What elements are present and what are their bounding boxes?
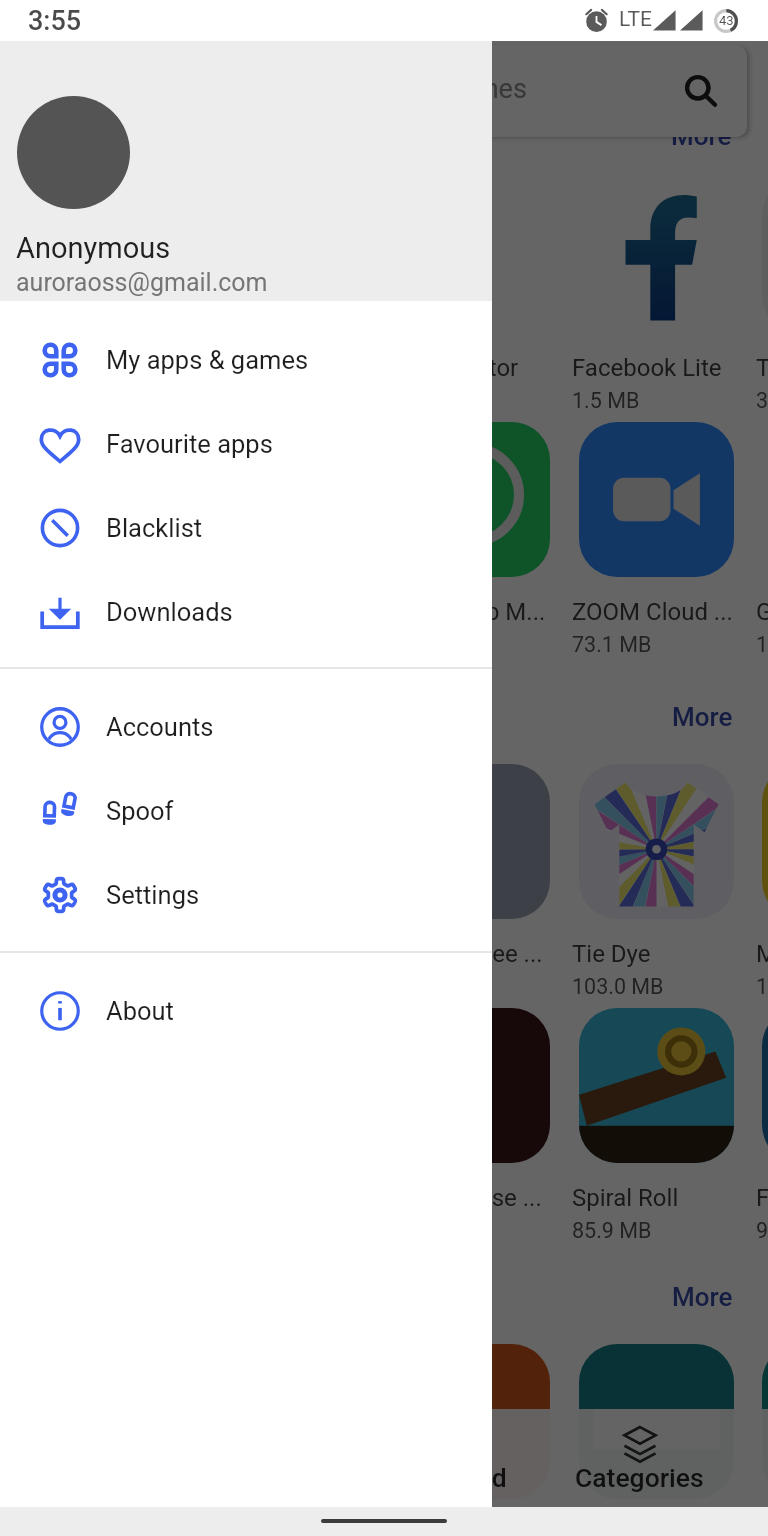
staticText: Snapseed	[22, 940, 183, 968]
staticText: Phone Case ...	[389, 1184, 550, 1212]
staticText: Spoof	[106, 796, 174, 826]
staticText: Messenger	[22, 598, 183, 626]
staticText: Downloads	[106, 597, 233, 627]
button[interactable]: Settings	[0, 853, 492, 937]
staticText: 73.1 MB	[572, 632, 652, 657]
staticText: Search for apps, games, movies & tunes	[48, 73, 527, 105]
staticText: Fun Race 3D	[756, 1184, 768, 1212]
staticText: Gallery Go	[756, 598, 768, 626]
staticText: MX Player	[22, 354, 183, 382]
button[interactable]: Blacklist	[0, 486, 492, 570]
staticText: My Talking ...	[756, 940, 768, 968]
staticText: ZOOM Cloud ...	[572, 598, 733, 626]
button[interactable]: Accounts	[0, 685, 492, 769]
staticText: 43	[719, 13, 734, 28]
button[interactable]: Spoof	[0, 769, 492, 853]
button[interactable]: My apps & games	[0, 318, 492, 402]
staticText: Hill Climb	[206, 1520, 367, 1536]
staticText: PUBG Mobile	[206, 940, 367, 968]
button[interactable]: Downloads	[0, 570, 492, 654]
staticText: auroraoss@gmail.com	[16, 268, 268, 297]
staticText: 3:55	[28, 5, 82, 37]
staticText: Favourite apps	[106, 429, 273, 459]
staticText: Garena Free ...	[389, 940, 550, 968]
staticText: Accounts	[106, 712, 214, 742]
staticText: WPS Office	[206, 354, 367, 382]
staticText: 38.1 MB	[756, 388, 768, 413]
staticText: Truecaller	[756, 354, 768, 382]
staticText: 1.5 MB	[572, 388, 640, 413]
staticText: Installed	[405, 1462, 507, 1493]
staticText: Settings	[106, 880, 200, 910]
staticText: Spiral Roll	[572, 1184, 733, 1212]
staticText: LTE	[619, 7, 652, 32]
button[interactable]: Favourite apps	[0, 402, 492, 486]
staticText: 85.9 MB	[572, 1218, 652, 1243]
staticText: WhatsApp M...	[389, 598, 550, 626]
staticText: Facebook Lite	[572, 354, 733, 382]
staticText: More	[672, 1282, 733, 1312]
staticText: 25.8 MB	[22, 974, 102, 999]
button[interactable]: Installed	[364, 1409, 547, 1505]
staticText: 103.0 MB	[572, 974, 664, 999]
staticText: Bowmasters	[389, 1520, 550, 1536]
staticText: Blacklist	[106, 513, 203, 543]
staticText: About	[106, 996, 174, 1026]
staticText: Tie Dye	[572, 940, 733, 968]
staticText: Anonymous	[16, 231, 171, 265]
staticText: Categories	[575, 1462, 704, 1493]
staticText: 12.6 MB	[756, 632, 768, 657]
staticText: More	[671, 121, 732, 151]
button[interactable]: About	[0, 969, 492, 1053]
staticText: Video Editor	[389, 354, 550, 382]
staticText: More	[672, 702, 733, 732]
button[interactable]: Categories	[548, 1409, 731, 1505]
staticText: 92.1 MB	[756, 1218, 768, 1243]
staticText: 110 MB	[756, 974, 768, 999]
staticText: Photo Studio	[206, 598, 367, 626]
staticText: My apps & games	[106, 345, 309, 375]
